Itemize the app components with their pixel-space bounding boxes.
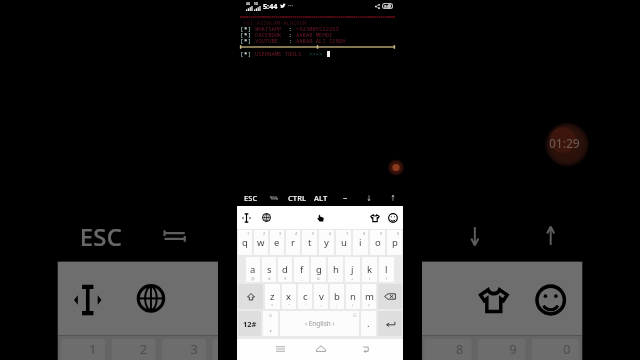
button[interactable]: g — [311, 257, 326, 282]
staticText: ESC — [244, 193, 258, 203]
button[interactable]: 3 — [270, 230, 284, 255]
staticText: g — [316, 263, 322, 276]
button[interactable]: a — [246, 257, 260, 282]
button[interactable]: 5 — [302, 230, 317, 255]
button[interactable]: . — [361, 311, 376, 336]
button[interactable]: Tab — [137, 198, 209, 262]
button[interactable]: Emoji — [529, 262, 570, 335]
button[interactable]: Tab — [262, 186, 285, 206]
button[interactable]: Emoji — [386, 206, 399, 229]
staticText: 12# — [243, 319, 257, 329]
staticText: ESC — [80, 220, 124, 252]
button[interactable]: ESC — [239, 186, 262, 206]
button[interactable]: Down — [357, 186, 381, 206]
staticText: : — [279, 37, 296, 44]
staticText: ] — [248, 25, 255, 32]
staticText: 9 — [510, 342, 519, 358]
staticText: : — [282, 25, 296, 32]
staticText: G — [353, 312, 357, 319]
button[interactable]: 8 — [424, 338, 472, 360]
button[interactable]: 9 — [370, 230, 385, 255]
staticText: * — [244, 25, 248, 32]
button[interactable]: 3 — [162, 338, 206, 360]
button[interactable]: Back — [358, 338, 372, 360]
button[interactable]: m — [362, 284, 376, 309]
button[interactable]: x — [282, 284, 296, 309]
staticText: AABAB MEHDI — [296, 31, 333, 38]
staticText: ; — [336, 303, 338, 308]
button[interactable]: Handwriting — [314, 206, 327, 229]
button[interactable]: − — [361, 198, 437, 262]
button[interactable]: 12# — [238, 311, 261, 336]
button[interactable]: Home — [314, 338, 328, 360]
button[interactable]: a — [263, 311, 278, 336]
button[interactable]: − — [333, 186, 357, 206]
button[interactable]: 1 — [238, 230, 252, 255]
staticText: ' — [305, 303, 306, 308]
button[interactable]: Recents — [273, 338, 287, 360]
button[interactable]: CTRL — [285, 186, 309, 206]
button[interactable]: Cursor — [67, 262, 108, 335]
staticText: m — [365, 290, 374, 303]
staticText: . — [367, 317, 370, 330]
button[interactable]: l — [379, 257, 394, 282]
button[interactable]: 6 — [319, 230, 334, 255]
button[interactable]: 7 — [371, 338, 418, 360]
button[interactable]: CTRL — [209, 198, 285, 262]
button[interactable]: Handwriting — [301, 262, 342, 335]
button[interactable] — [238, 284, 263, 309]
staticText: l — [385, 263, 388, 276]
staticText: $ — [284, 276, 287, 281]
staticText: * — [244, 31, 248, 38]
staticText: i — [359, 236, 362, 249]
button[interactable]: 1 — [61, 338, 105, 360]
button[interactable] — [378, 311, 402, 336]
button[interactable]: Down — [437, 198, 513, 262]
button[interactable]: h — [328, 257, 343, 282]
button[interactable]: ESC — [64, 198, 137, 262]
staticText: [ — [240, 37, 244, 44]
button[interactable]: z — [265, 284, 280, 309]
staticText: - — [335, 276, 337, 281]
button[interactable]: G — [280, 311, 359, 336]
staticText: 8 — [456, 342, 465, 358]
button[interactable] — [378, 284, 402, 309]
button[interactable]: 5 — [263, 338, 310, 360]
button[interactable]: ALT — [285, 198, 361, 262]
button[interactable]: n — [346, 284, 360, 309]
staticText: 1 — [89, 342, 99, 358]
button[interactable]: 4 — [213, 338, 257, 360]
button[interactable]: c — [298, 284, 312, 309]
staticText: e — [274, 236, 280, 249]
button[interactable]: 4 — [286, 230, 300, 255]
button[interactable]: j — [345, 257, 360, 282]
button[interactable]: ALT — [309, 186, 333, 206]
button[interactable]: Up — [513, 198, 589, 262]
button[interactable]: d — [278, 257, 292, 282]
button[interactable]: Theme — [368, 206, 381, 229]
button[interactable]: 2 — [111, 338, 156, 360]
button[interactable]: 0 — [532, 338, 579, 360]
button[interactable]: s — [262, 257, 276, 282]
button[interactable]: 0 — [387, 230, 402, 255]
button[interactable]: Language — [260, 206, 273, 229]
button[interactable]: Up — [381, 186, 405, 206]
button[interactable]: b — [330, 284, 344, 309]
button[interactable]: v — [314, 284, 328, 309]
staticText: z — [270, 290, 275, 303]
staticText: 7 — [346, 231, 349, 236]
button[interactable]: Theme — [472, 262, 513, 335]
button[interactable]: f — [294, 257, 309, 282]
button[interactable]: 2 — [254, 230, 268, 255]
button[interactable]: k — [362, 257, 377, 282]
button[interactable]: 9 — [478, 338, 525, 360]
button[interactable]: 6 — [317, 338, 364, 360]
button[interactable]: 8 — [353, 230, 368, 255]
staticText: j — [351, 263, 354, 276]
staticText: b — [334, 290, 340, 303]
button[interactable]: Cursor — [240, 206, 253, 229]
button[interactable]: Language — [130, 262, 171, 335]
button[interactable]: 7 — [336, 230, 351, 255]
